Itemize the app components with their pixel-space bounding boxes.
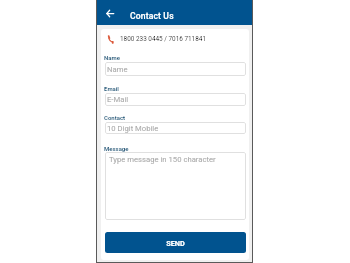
staticText: Type message in 150 character <box>109 155 216 164</box>
staticText: E-Mail <box>107 95 129 104</box>
button[interactable]: Back <box>104 7 116 19</box>
button[interactable]: SEND <box>105 232 246 253</box>
staticText: Name <box>107 65 128 74</box>
button[interactable]: Type message in 150 character <box>105 152 246 220</box>
staticText: Email <box>104 85 119 92</box>
staticText: 10 Digit Mobile <box>107 124 159 133</box>
button[interactable]: 10 Digit Mobile <box>105 122 246 134</box>
staticText: SEND <box>166 239 185 248</box>
button[interactable]: Name <box>105 62 246 76</box>
staticText: Name <box>104 54 120 61</box>
staticText: Contact Us <box>130 11 174 21</box>
button[interactable]: 1800 233 0445 / 7016 711841 <box>107 34 206 44</box>
button[interactable]: E-Mail <box>105 93 246 106</box>
staticText: Message <box>104 145 129 152</box>
staticText: Contact <box>104 114 126 121</box>
staticText: 1800 233 0445 / 7016 711841 <box>120 35 206 43</box>
